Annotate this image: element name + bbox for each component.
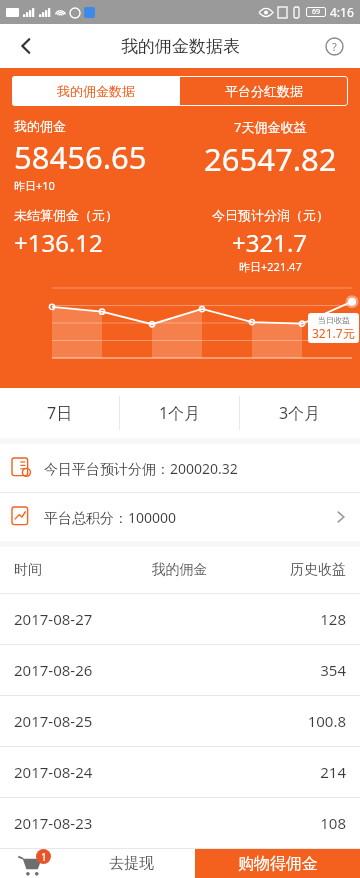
staticText: 7日 xyxy=(47,402,73,424)
staticText: 购物得佣金 xyxy=(238,854,318,874)
staticText: 100.8 xyxy=(235,711,346,731)
button[interactable]: 2017-08-23 xyxy=(0,798,360,848)
staticText: 69 xyxy=(312,7,321,17)
staticText: 今日平台预计分佣：200020.32 xyxy=(44,459,238,478)
staticText: 2017-08-23 xyxy=(14,813,124,833)
staticText: 去提现 xyxy=(109,854,154,873)
staticText: 我的佣金数据 xyxy=(57,83,135,99)
button[interactable]: 3个月 xyxy=(240,388,360,438)
staticText: 我的佣金 xyxy=(14,118,66,134)
staticText: 4:16 xyxy=(330,4,354,20)
button[interactable]: 1个月 xyxy=(120,388,240,438)
staticText: 26547.82 xyxy=(204,138,337,180)
staticText: 2017-08-24 xyxy=(14,762,124,782)
button[interactable]: 今日平台预计分佣：200020.32 xyxy=(0,444,360,492)
staticText: 1个月 xyxy=(159,402,201,424)
staticText: 214 xyxy=(235,762,346,782)
staticText: 58456.65 xyxy=(14,136,147,178)
staticText: 354 xyxy=(235,660,346,680)
staticText: 1 xyxy=(41,850,47,864)
button[interactable]: 2017-08-24 xyxy=(0,747,360,797)
staticText: 昨日+221.47 xyxy=(239,259,302,274)
button[interactable]: 2017-08-27 xyxy=(0,594,360,644)
staticText: 时间 xyxy=(14,561,124,579)
staticText: 平台分红数据 xyxy=(225,83,303,99)
staticText: 平台总积分：100000 xyxy=(44,508,177,527)
staticText: 2017-08-27 xyxy=(14,609,124,629)
button[interactable]: 平台总积分：100000 xyxy=(0,493,360,541)
staticText: 我的佣金 xyxy=(124,561,235,579)
staticText: 今日预计分润（元） xyxy=(212,207,329,223)
staticText: 2017-08-26 xyxy=(14,660,124,680)
staticText: 当日收益 xyxy=(318,315,350,325)
staticText: 我的佣金数据表 xyxy=(121,36,240,57)
button[interactable]: 购物得佣金 xyxy=(195,849,360,878)
button[interactable]: 2017-08-26 xyxy=(0,645,360,695)
staticText: 321.7元 xyxy=(312,325,355,341)
button[interactable]: 2017-08-25 xyxy=(0,696,360,746)
staticText: 7天佣金收益 xyxy=(234,118,307,136)
staticText: 2017-08-25 xyxy=(14,711,124,731)
button[interactable]: Back xyxy=(4,24,48,68)
staticText: +136.12 xyxy=(14,226,103,259)
staticText: 未结算佣金（元） xyxy=(14,207,118,223)
staticText: 128 xyxy=(235,609,346,629)
button[interactable]: 去提现 xyxy=(68,849,195,878)
staticText: 108 xyxy=(235,813,346,833)
staticText: 历史收益 xyxy=(235,561,346,579)
button[interactable]: Cart xyxy=(0,849,68,878)
button[interactable]: 我的佣金数据 xyxy=(12,76,180,106)
staticText: +321.7 xyxy=(232,226,308,259)
button[interactable]: Help xyxy=(314,26,354,66)
button[interactable]: 平台分红数据 xyxy=(180,76,348,106)
staticText: 昨日+10 xyxy=(14,178,55,193)
button[interactable]: 7日 xyxy=(0,388,120,438)
staticText: ? xyxy=(332,39,337,54)
staticText: 3个月 xyxy=(279,402,321,424)
